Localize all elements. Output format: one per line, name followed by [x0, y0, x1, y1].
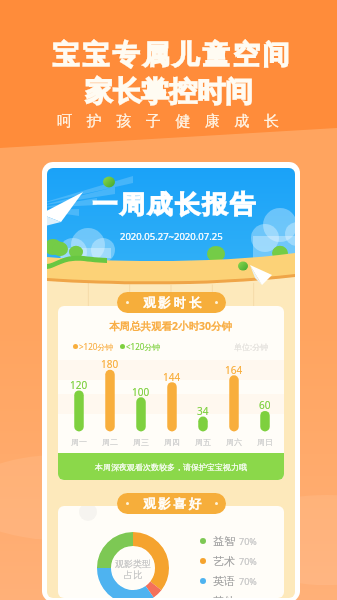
staticText: 一周成长报告	[91, 189, 256, 220]
staticText: 周二	[102, 437, 118, 447]
staticText: 180	[101, 357, 119, 371]
staticText: 周日	[257, 437, 273, 447]
staticText: 其他	[213, 594, 235, 598]
staticText: 英语	[213, 574, 235, 588]
staticText: >120分钟	[79, 341, 114, 352]
staticText: 本周总共观看2小时30分钟	[109, 319, 233, 333]
staticText: 观影类型	[115, 558, 151, 569]
button[interactable]: 艺术	[200, 552, 257, 570]
staticText: 144	[163, 370, 181, 384]
staticText: 周三	[133, 437, 149, 447]
staticText: 120	[70, 378, 88, 392]
staticText: 周六	[226, 437, 242, 447]
staticText: 70%	[239, 535, 257, 547]
staticText: 呵护孩子健康成长	[57, 112, 294, 131]
button[interactable]: 英语	[200, 572, 257, 590]
staticText: 70%	[239, 575, 257, 587]
staticText: <120分钟	[126, 341, 161, 352]
staticText: 周四	[164, 437, 180, 447]
staticText: 周五	[195, 437, 211, 447]
button[interactable]: 观影时长	[117, 292, 226, 313]
staticText: 益智	[213, 534, 235, 548]
staticText: 34	[197, 404, 209, 418]
staticText: 2020.05.27~2020.07.25	[120, 230, 223, 243]
button[interactable]: 益智	[200, 532, 257, 550]
staticText: 占比	[124, 569, 142, 580]
staticText: 本周深夜观看次数较多，请保护宝宝视力哦	[95, 462, 247, 472]
staticText: 观影时长	[143, 295, 205, 311]
button[interactable]: 其他	[200, 592, 257, 598]
staticText: 100	[132, 385, 150, 399]
staticText: 家长掌控时间	[85, 74, 253, 109]
staticText: 60	[259, 398, 271, 412]
staticText: 单位:分钟	[234, 341, 269, 352]
staticText: 周一	[71, 437, 87, 447]
staticText: 70%	[239, 555, 257, 567]
staticText: 164	[225, 363, 243, 377]
staticText: 观影喜好	[143, 496, 205, 512]
staticText: 艺术	[213, 554, 235, 568]
staticText: 宝宝专属儿童空间	[51, 38, 291, 72]
button[interactable]: 观影喜好	[117, 493, 226, 514]
